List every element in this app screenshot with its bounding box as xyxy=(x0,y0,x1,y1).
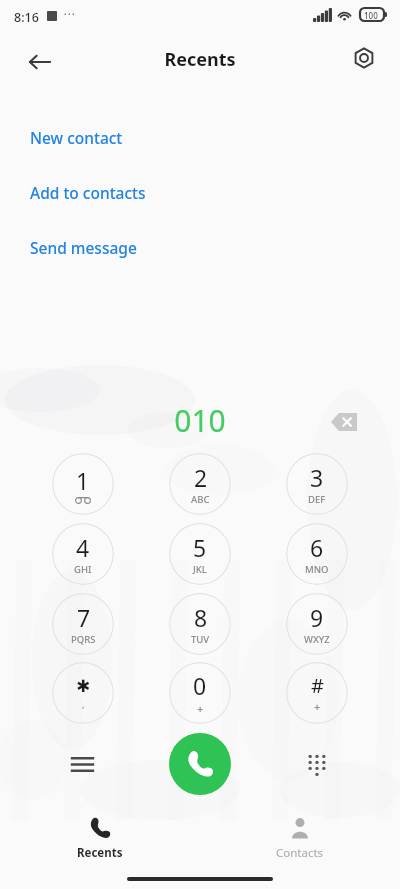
button[interactable]: Call log options xyxy=(60,742,104,786)
staticText: ⋯ xyxy=(63,7,75,21)
staticText: DEF xyxy=(308,493,326,506)
staticText: 010 xyxy=(0,400,400,441)
button[interactable]: # xyxy=(286,662,348,724)
staticText: GHI xyxy=(74,563,92,576)
button[interactable]: Send message xyxy=(0,220,400,275)
staticText: 2 xyxy=(194,462,208,493)
staticText: 100 xyxy=(364,10,378,21)
staticText: # xyxy=(311,672,324,699)
staticText: 8 xyxy=(194,602,208,633)
staticText: + xyxy=(314,699,321,714)
staticText: ✱ xyxy=(76,676,91,696)
staticText: Recents xyxy=(77,845,123,861)
staticText: , xyxy=(82,698,85,710)
button[interactable]: Recents xyxy=(0,810,200,868)
button[interactable]: New contact xyxy=(0,110,400,165)
button[interactable]: 5 xyxy=(169,523,231,585)
staticText: WXYZ xyxy=(304,633,330,646)
staticText: MNO xyxy=(305,563,329,576)
staticText: + xyxy=(197,701,204,716)
staticText: ABC xyxy=(191,493,210,506)
button[interactable]: Dialpad xyxy=(295,742,339,786)
staticText: 1 xyxy=(76,465,90,496)
button[interactable]: 9 xyxy=(286,593,348,655)
staticText: New contact xyxy=(30,127,123,148)
button[interactable]: Backspace xyxy=(322,400,366,444)
button[interactable]: ✱ xyxy=(52,662,114,724)
staticText: Add to contacts xyxy=(30,182,146,203)
staticText: Contacts xyxy=(276,845,324,861)
button[interactable]: 3 xyxy=(286,453,348,515)
staticText: 0 xyxy=(193,670,207,701)
button[interactable]: 1 xyxy=(52,453,114,515)
button[interactable]: Call xyxy=(169,733,231,795)
staticText: Send message xyxy=(30,237,137,258)
staticText: 6 xyxy=(310,532,324,563)
button[interactable]: 4 xyxy=(52,523,114,585)
button[interactable]: 7 xyxy=(52,593,114,655)
staticText: TUV xyxy=(191,633,210,646)
button[interactable]: Back xyxy=(18,40,62,84)
staticText: Recents xyxy=(0,47,400,72)
button[interactable]: 8 xyxy=(169,593,231,655)
button[interactable]: Contacts xyxy=(200,810,400,868)
button[interactable]: 2 xyxy=(169,453,231,515)
button[interactable]: Settings xyxy=(342,36,386,80)
staticText: 3 xyxy=(310,462,324,493)
staticText: 8:16 xyxy=(14,9,39,26)
button[interactable]: 0 xyxy=(169,662,231,724)
staticText: 9 xyxy=(310,602,324,633)
staticText: 5 xyxy=(193,532,207,563)
staticText: 7 xyxy=(77,602,91,633)
staticText: JKL xyxy=(193,563,207,576)
staticText: PQRS xyxy=(71,633,96,646)
button[interactable]: 6 xyxy=(286,523,348,585)
button[interactable]: Add to contacts xyxy=(0,165,400,220)
staticText: 4 xyxy=(76,532,90,563)
